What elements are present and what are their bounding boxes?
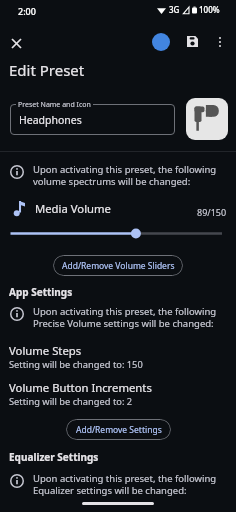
staticText: Preset Name and Icon bbox=[18, 100, 91, 110]
button[interactable]: Save bbox=[181, 30, 204, 53]
button[interactable]: Headphones bbox=[10, 104, 175, 135]
button[interactable]: Close bbox=[4, 31, 28, 55]
button[interactable]: Volume Steps bbox=[0, 343, 236, 371]
staticText: Edit Preset bbox=[9, 60, 85, 80]
staticText: Media Volume bbox=[35, 201, 111, 216]
button[interactable]: More options bbox=[209, 31, 231, 53]
button[interactable]: Media Volume slider bbox=[6, 224, 230, 243]
staticText: 100% bbox=[199, 4, 220, 15]
button[interactable]: Preset icon bbox=[186, 98, 228, 140]
staticText: 89/150 bbox=[197, 206, 227, 218]
staticText: Upon activating this preset, the followi… bbox=[33, 163, 217, 188]
staticText: Upon activating this preset, the followi… bbox=[33, 305, 217, 330]
staticText: App Settings bbox=[9, 285, 73, 299]
staticText: Setting will be changed to: 150 bbox=[9, 358, 143, 371]
staticText: Equalizer Settings bbox=[9, 450, 99, 464]
staticText: Setting will be changed to: 2 bbox=[9, 395, 133, 408]
staticText: Volume Button Increments bbox=[9, 380, 152, 395]
button[interactable]: Add/Remove Settings bbox=[66, 419, 171, 440]
staticText: 3G bbox=[169, 4, 180, 15]
button[interactable]: Volume Button Increments bbox=[0, 380, 236, 408]
staticText: Add/Remove Volume Sliders bbox=[62, 260, 175, 272]
button[interactable]: Preset colour bbox=[152, 33, 170, 51]
button[interactable]: Add/Remove Volume Sliders bbox=[53, 255, 183, 276]
staticText: Upon activating this preset, the followi… bbox=[33, 472, 217, 497]
staticText: Volume Steps bbox=[9, 343, 82, 358]
staticText: Add/Remove Settings bbox=[76, 424, 162, 436]
staticText: 2:00 bbox=[18, 5, 36, 17]
staticText: Headphones bbox=[19, 113, 82, 127]
